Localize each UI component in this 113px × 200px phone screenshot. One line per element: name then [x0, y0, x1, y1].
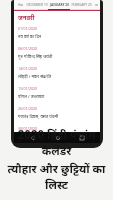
staticText: FEBRUARY 20	[71, 3, 92, 7]
button[interactable]: 14/01/2020	[18, 66, 96, 86]
button[interactable]: 26/01/2020	[18, 106, 96, 126]
staticText: 2020 हिंदी पंचांग कैलेंडर	[3, 127, 110, 159]
button[interactable]: 01/01/2020	[18, 26, 96, 46]
staticText: 15/01/2020	[18, 86, 38, 91]
staticText: त्यौहार और छुट्टियों का लिस्ट	[3, 161, 110, 193]
button[interactable]: 30/01/2020	[18, 126, 96, 132]
staticText: 14/01/2020	[18, 66, 38, 71]
staticText: 26/01/2020	[18, 106, 38, 111]
staticText: 30/01/2020	[18, 126, 38, 131]
button[interactable]: FEBRUARY 20	[70, 0, 92, 9]
staticText: पोंगल / उत्तरायण	[18, 94, 45, 100]
button[interactable]: 15/01/2020	[18, 86, 96, 106]
staticText: मा	[95, 3, 98, 7]
staticText: लोहड़ी / मकर संक्रांति	[18, 74, 52, 80]
button[interactable]: Recent apps	[76, 132, 87, 143]
button[interactable]: JANUARY 20	[48, 0, 70, 9]
staticText: दिस	[18, 3, 23, 7]
button[interactable]: मा	[92, 0, 100, 9]
staticText: गणतंत्र दिवस, वसंत पंचमी	[18, 114, 59, 120]
button[interactable]: Back	[27, 132, 38, 143]
staticText: JANUARY 20	[50, 3, 69, 7]
button[interactable]: दिस	[14, 0, 26, 9]
button[interactable]: Home	[52, 132, 63, 143]
button[interactable]: DECEMBER 19	[26, 0, 48, 9]
button[interactable]: जनवरी	[18, 14, 96, 22]
staticText: 01/01/2020	[18, 26, 38, 31]
staticText: 06/01/2020	[18, 46, 38, 51]
staticText: गुरु गोविन्द सिंह जयंती	[18, 54, 53, 60]
button[interactable]: 06/01/2020	[18, 46, 96, 66]
staticText: जनवरी	[18, 14, 35, 22]
staticText: नव वर्ष का दिन	[18, 34, 42, 40]
staticText: DECEMBER 19	[26, 3, 48, 7]
